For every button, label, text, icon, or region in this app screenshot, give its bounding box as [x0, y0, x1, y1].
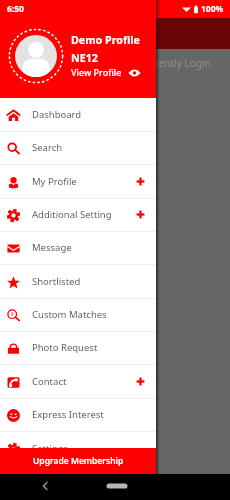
staticText: Additional Setting: [32, 208, 112, 221]
staticText: NE12: [71, 51, 98, 66]
staticText: Recently Login: [142, 56, 211, 70]
staticText: Photo Request: [32, 341, 98, 354]
staticText: My Profile: [32, 175, 77, 188]
button[interactable]: Express Interest: [0, 398, 156, 432]
staticText: View Profile: [71, 66, 122, 78]
button[interactable]: Photo Request: [0, 331, 156, 365]
staticText: Settings: [32, 442, 69, 455]
button[interactable]: Settings: [0, 432, 156, 466]
staticText: 6:50: [7, 3, 24, 15]
staticText: Contact: [32, 375, 67, 388]
button[interactable]: Upgrade Membership: [0, 448, 156, 474]
button[interactable]: Contact: [0, 365, 156, 399]
button[interactable]: Additional Setting: [0, 198, 156, 232]
button[interactable]: Message: [0, 231, 156, 265]
button[interactable]: [8, 28, 64, 84]
button[interactable]: Shortlisted: [0, 265, 156, 299]
staticText: 100%: [201, 3, 224, 15]
staticText: Upgrade Membership: [33, 455, 124, 467]
button[interactable]: Custom Matches: [0, 298, 156, 332]
button[interactable]: View Profile: [71, 66, 141, 78]
staticText: Express Interest: [32, 408, 104, 421]
staticText: Custom Matches: [32, 308, 107, 321]
staticText: Dashboard: [32, 108, 82, 121]
button[interactable]: Search: [0, 131, 156, 165]
staticText: Message: [32, 241, 72, 254]
button[interactable]: Dashboard: [0, 98, 156, 132]
staticText: Search: [32, 141, 63, 154]
staticText: Shortlisted: [32, 275, 81, 288]
button[interactable]: My Profile: [0, 165, 156, 199]
staticText: Demo Profile: [71, 33, 140, 48]
